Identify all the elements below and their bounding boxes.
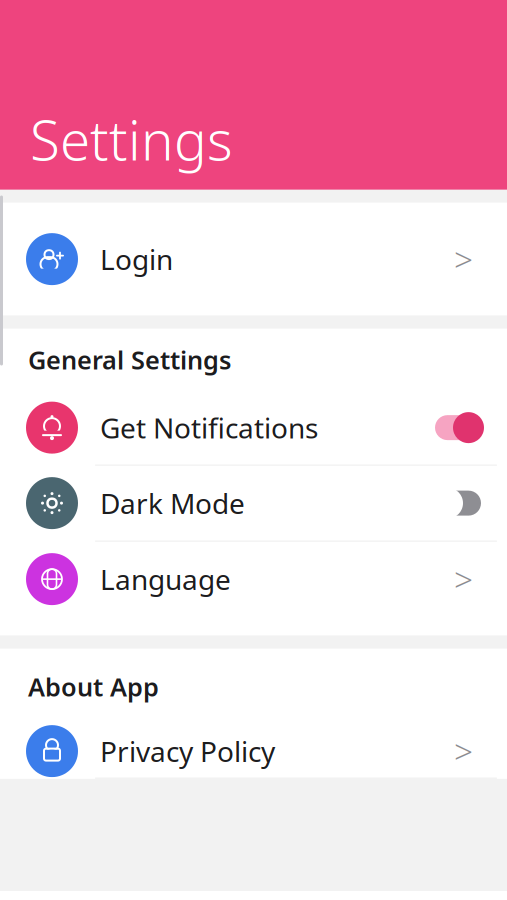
button[interactable]: Dark Mode [0,466,507,542]
staticText: Get Notifications [100,409,318,446]
staticText: About App [28,670,159,703]
staticText: > [454,729,473,773]
staticText: Privacy Policy [100,732,275,770]
button[interactable]: Login [0,203,507,316]
button[interactable]: Language [0,542,507,617]
staticText: Login [100,240,173,278]
button[interactable]: Get Notifications [0,391,507,466]
staticText: Language [100,560,231,598]
staticText: General Settings [28,343,231,376]
button[interactable]: Privacy Policy [0,725,507,779]
staticText: > [454,237,473,281]
staticText: Settings [30,103,233,175]
staticText: Dark Mode [100,484,245,522]
staticText: > [454,557,473,601]
